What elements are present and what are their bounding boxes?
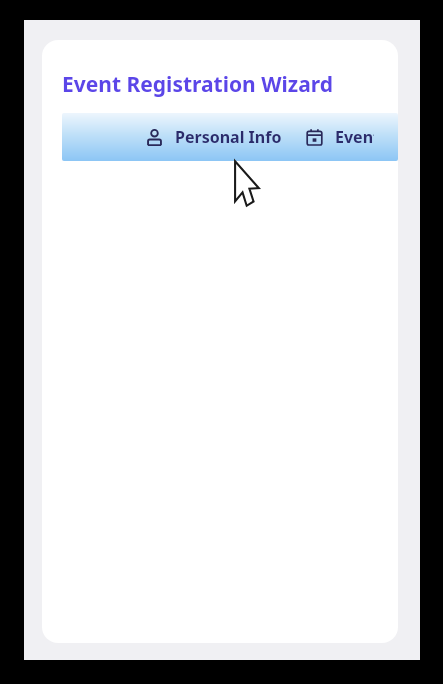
staticText: Personal Info — [175, 126, 282, 148]
staticText: Event Registration Wizard — [62, 70, 333, 99]
button[interactable]: Event Details — [306, 113, 398, 161]
staticText: Event Details — [335, 126, 374, 148]
button[interactable]: Personal Info — [62, 113, 306, 161]
